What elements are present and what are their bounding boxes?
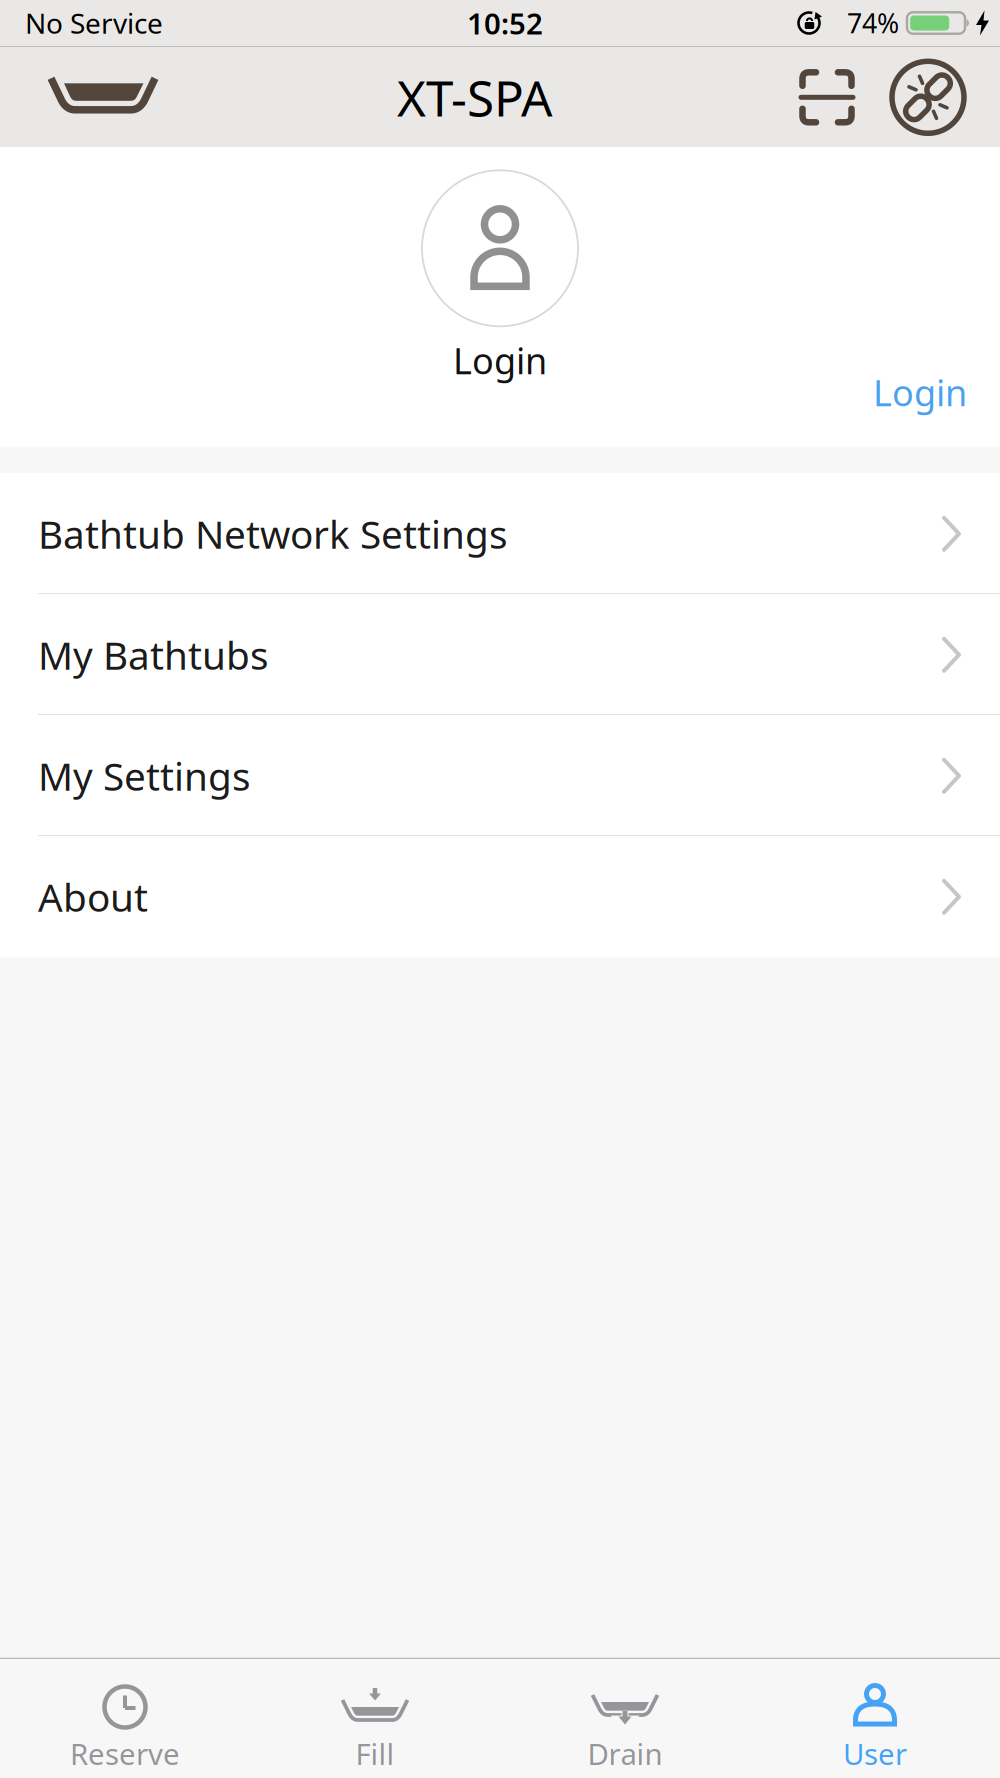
button[interactable]: Login — [422, 147, 578, 394]
staticText: Fill — [355, 1734, 394, 1773]
staticText: My Settings — [38, 750, 251, 801]
button[interactable]: Bathtub Network Settings — [0, 473, 1000, 594]
button[interactable]: Login — [873, 368, 967, 416]
button[interactable]: My Bathtubs — [0, 594, 1000, 715]
staticText: About — [38, 871, 148, 922]
staticText: My Bathtubs — [38, 629, 269, 680]
button[interactable]: Scan — [799, 69, 855, 126]
staticText: Login — [873, 368, 967, 416]
staticText: 10:52 — [467, 3, 543, 42]
staticText: Login — [453, 336, 547, 384]
staticText: Reserve — [70, 1734, 180, 1773]
button[interactable]: Reserve — [0, 1660, 250, 1777]
button[interactable]: Drain — [500, 1660, 750, 1777]
staticText: User — [843, 1734, 907, 1773]
staticText: 74% — [847, 5, 899, 41]
button[interactable]: Fill — [250, 1660, 500, 1777]
button[interactable]: Home — [0, 77, 158, 117]
staticText: Drain — [587, 1734, 662, 1773]
button[interactable]: About — [0, 836, 1000, 957]
staticText: XT-SPA — [397, 64, 553, 130]
button[interactable]: My Settings — [0, 715, 1000, 836]
button[interactable]: User — [750, 1660, 1000, 1777]
staticText: Bathtub Network Settings — [38, 508, 508, 559]
button[interactable]: Connect — [855, 60, 1000, 134]
staticText: No Service — [25, 4, 163, 42]
